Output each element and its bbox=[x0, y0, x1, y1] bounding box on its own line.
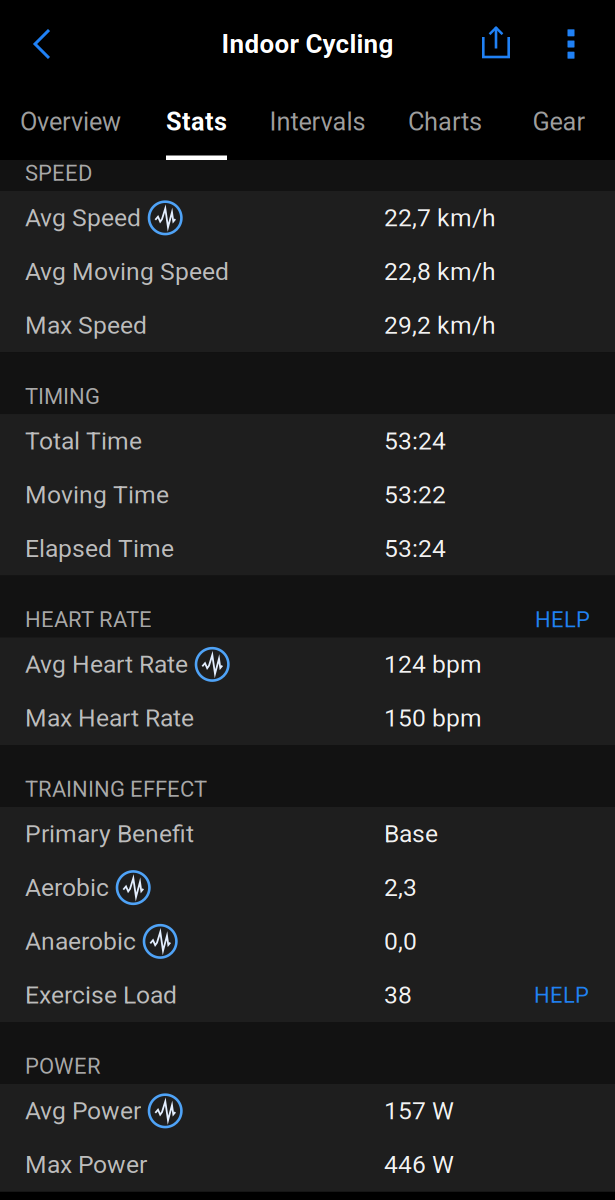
button[interactable]: Stats bbox=[144, 88, 249, 160]
staticText: Avg Speed bbox=[25, 203, 141, 232]
button[interactable]: Gear bbox=[504, 88, 614, 160]
button[interactable]: Max Heart Rate bbox=[0, 691, 615, 745]
staticText: 22,8 km/h bbox=[384, 257, 496, 286]
staticText: SPEED bbox=[25, 160, 92, 186]
staticText: 150 bpm bbox=[384, 704, 482, 733]
staticText: Max Heart Rate bbox=[25, 704, 194, 733]
staticText: 22,7 km/h bbox=[384, 203, 496, 232]
button[interactable]: HELP bbox=[535, 607, 590, 632]
button[interactable]: Anaerobic bbox=[0, 914, 615, 968]
staticText: Avg Power bbox=[25, 1096, 141, 1125]
staticText: Avg Heart Rate bbox=[25, 650, 188, 679]
staticText: 53:24 bbox=[384, 427, 446, 456]
button[interactable]: Back bbox=[16, 16, 68, 72]
staticText: Anaerobic bbox=[25, 927, 136, 956]
staticText: Overview bbox=[20, 107, 121, 137]
staticText: Intervals bbox=[269, 107, 365, 137]
staticText: 29,2 km/h bbox=[384, 311, 496, 340]
staticText: 38 bbox=[384, 981, 412, 1010]
staticText: Max Power bbox=[25, 1150, 147, 1179]
button[interactable]: Avg Speed bbox=[0, 191, 615, 245]
button[interactable]: Total Time bbox=[0, 414, 615, 468]
staticText: 157 W bbox=[384, 1096, 454, 1125]
staticText: Gear bbox=[532, 107, 585, 137]
staticText: 0,0 bbox=[384, 927, 417, 956]
staticText: Exercise Load bbox=[25, 981, 177, 1010]
button[interactable]: Avg Power bbox=[0, 1084, 615, 1138]
button[interactable]: Exercise Load bbox=[0, 968, 615, 1022]
staticText: Stats bbox=[166, 107, 227, 137]
staticText: Primary Benefit bbox=[25, 819, 194, 848]
button[interactable]: Aerobic bbox=[0, 861, 615, 915]
button[interactable]: Moving Time bbox=[0, 468, 615, 522]
staticText: 53:24 bbox=[384, 534, 446, 563]
button[interactable]: Share bbox=[470, 16, 522, 72]
button[interactable]: Max Power bbox=[0, 1138, 615, 1192]
staticText: TIMING bbox=[25, 383, 100, 409]
staticText: Elapsed Time bbox=[25, 534, 174, 563]
staticText: Charts bbox=[408, 107, 482, 137]
staticText: 124 bpm bbox=[384, 650, 482, 679]
button[interactable]: Overview bbox=[0, 88, 144, 160]
button[interactable]: Elapsed Time bbox=[0, 522, 615, 576]
button[interactable]: Intervals bbox=[249, 88, 386, 160]
staticText: 446 W bbox=[384, 1150, 454, 1179]
staticText: Base bbox=[384, 819, 438, 848]
staticText: HELP bbox=[534, 982, 589, 1008]
button[interactable]: Max Speed bbox=[0, 298, 615, 352]
staticText: Avg Moving Speed bbox=[25, 257, 229, 286]
staticText: HELP bbox=[535, 607, 590, 632]
staticText: Max Speed bbox=[25, 311, 147, 340]
staticText: Moving Time bbox=[25, 480, 169, 509]
button[interactable]: Charts bbox=[386, 88, 504, 160]
button[interactable]: Primary Benefit bbox=[0, 807, 615, 861]
button[interactable]: Avg Heart Rate bbox=[0, 637, 615, 691]
staticText: 53:22 bbox=[384, 480, 446, 509]
button[interactable]: Avg Moving Speed bbox=[0, 245, 615, 299]
staticText: 2,3 bbox=[384, 873, 417, 902]
button[interactable]: More options bbox=[545, 16, 597, 72]
staticText: POWER bbox=[25, 1053, 101, 1079]
staticText: Indoor Cycling bbox=[221, 29, 393, 59]
staticText: Total Time bbox=[25, 427, 142, 456]
staticText: TRAINING EFFECT bbox=[25, 776, 207, 802]
staticText: Aerobic bbox=[25, 873, 109, 902]
staticText: HEART RATE bbox=[25, 607, 152, 632]
